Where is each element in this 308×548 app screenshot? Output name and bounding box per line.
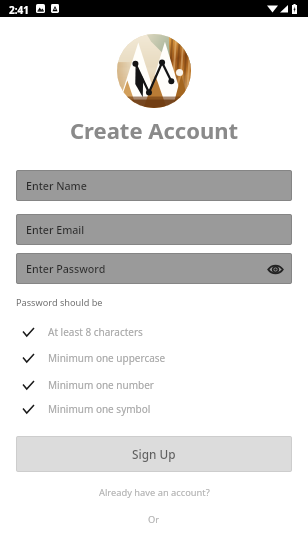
button[interactable]: Enter Name — [16, 170, 292, 201]
button[interactable]: Minimum one uppercase — [0, 345, 308, 371]
button[interactable]: Minimum one symbol — [0, 396, 308, 422]
staticText: At least 8 characters — [48, 325, 143, 339]
staticText: Minimum one symbol — [48, 402, 151, 416]
button[interactable]: Already have an account? — [99, 486, 210, 499]
staticText: 2:41 — [9, 3, 29, 17]
staticText: Enter Email — [26, 223, 85, 238]
staticText: Minimum one number — [48, 378, 154, 392]
button[interactable]: Minimum one number — [0, 372, 308, 398]
button[interactable]: At least 8 characters — [0, 319, 308, 345]
staticText: Minimum one uppercase — [48, 351, 166, 365]
button[interactable]: Enter Email — [16, 214, 292, 245]
staticText: Password should be — [16, 296, 103, 309]
staticText: Sign Up — [132, 446, 176, 462]
staticText: Create Account — [70, 115, 239, 145]
staticText: Enter Password — [26, 262, 106, 277]
button[interactable]: Sign Up — [16, 436, 292, 472]
staticText: Or — [148, 513, 160, 526]
button[interactable]: Show password — [266, 260, 284, 278]
button[interactable]: Enter Password — [16, 253, 292, 284]
staticText: Enter Name — [26, 179, 87, 194]
